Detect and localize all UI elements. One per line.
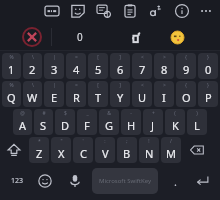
button[interactable]: Info — [172, 0, 192, 22]
button[interactable]: < — [132, 53, 152, 79]
button[interactable]: ) — [187, 109, 207, 135]
button[interactable]: / — [161, 137, 181, 163]
staticText: 123 — [11, 176, 24, 186]
staticText: - — [130, 110, 132, 117]
staticText: . — [174, 174, 177, 189]
staticText: S — [40, 118, 47, 133]
button[interactable]: = — [66, 53, 86, 79]
staticText: Y — [117, 90, 124, 105]
button[interactable]: Voice typing — [146, 0, 166, 22]
staticText: 1 — [8, 62, 15, 77]
button[interactable]: Emoji — [34, 168, 56, 194]
button[interactable]: GIF — [42, 0, 62, 22]
button[interactable]: ' — [73, 137, 93, 163]
staticText: / — [170, 138, 172, 145]
button[interactable]: : — [95, 137, 115, 163]
button[interactable]: [ — [88, 53, 108, 79]
staticText: ] — [119, 54, 121, 61]
button[interactable]: Shift — [2, 137, 26, 163]
staticText: } — [207, 82, 209, 89]
staticText: % — [9, 82, 14, 89]
staticText: % — [9, 54, 14, 61]
button[interactable]: Microsoft SwiftKey — [92, 168, 158, 194]
staticText: { — [185, 82, 187, 89]
staticText: 6 — [117, 62, 124, 77]
staticText: I — [162, 90, 166, 105]
staticText: R — [73, 90, 80, 105]
button[interactable]: - — [121, 109, 141, 135]
staticText: } — [207, 54, 209, 61]
staticText: < — [141, 54, 144, 61]
button[interactable]: < — [132, 81, 152, 107]
staticText: 7 — [139, 62, 146, 77]
button[interactable]: ] — [110, 53, 130, 79]
button[interactable]: @ — [13, 109, 32, 135]
staticText: V — [102, 146, 109, 161]
staticText: Z — [36, 146, 43, 161]
button[interactable]: + — [143, 109, 163, 135]
staticText: = — [75, 82, 78, 89]
staticText: " — [60, 138, 63, 145]
button[interactable]: 0 — [52, 24, 108, 50]
staticText: & — [107, 110, 111, 117]
staticText: G — [105, 118, 114, 133]
staticText: B — [123, 146, 131, 161]
button[interactable]: * — [29, 137, 49, 163]
button[interactable]: & — [99, 109, 119, 135]
staticText: > — [163, 54, 166, 61]
staticText: Q — [7, 90, 16, 105]
button[interactable]: % — [2, 81, 21, 107]
button[interactable]: Backspace — [184, 137, 210, 163]
staticText: 2 — [29, 62, 36, 77]
button[interactable]: Clipboard — [120, 0, 140, 22]
button[interactable]: Stickers — [68, 0, 88, 22]
staticText: 9 — [183, 62, 190, 77]
button[interactable]: > — [154, 53, 174, 79]
button[interactable]: . — [166, 168, 184, 194]
button[interactable]: More options — [198, 0, 214, 22]
button[interactable]: 123 — [6, 168, 28, 194]
staticText: \ — [32, 82, 34, 89]
staticText: _ — [86, 110, 89, 117]
button[interactable]: { — [176, 53, 196, 79]
button[interactable]: > — [154, 81, 174, 107]
button[interactable]: { — [176, 81, 196, 107]
staticText: A — [19, 118, 27, 133]
button[interactable]: % — [2, 53, 21, 79]
button[interactable]: $ — [55, 109, 75, 135]
staticText: @ — [20, 110, 25, 117]
staticText: | — [53, 82, 56, 89]
staticText: ] — [119, 82, 121, 89]
button[interactable]: # — [34, 109, 53, 135]
staticText: H — [127, 118, 136, 133]
button[interactable]: | — [44, 53, 64, 79]
button[interactable]: Suggestion — [108, 24, 164, 50]
button[interactable]: ! — [139, 137, 159, 163]
button[interactable]: } — [198, 53, 218, 79]
staticText: { — [185, 54, 187, 61]
button[interactable]: } — [198, 81, 218, 107]
staticText: $ — [64, 110, 67, 117]
button[interactable]: ; — [117, 137, 137, 163]
button[interactable]: Enter — [190, 168, 214, 194]
button[interactable]: ] — [110, 81, 130, 107]
button[interactable]: Emoji suggestion — [154, 24, 200, 50]
button[interactable]: [ — [88, 81, 108, 107]
staticText: * — [38, 138, 41, 145]
button[interactable]: \ — [23, 53, 42, 79]
button[interactable]: _ — [77, 109, 97, 135]
button[interactable]: Close — [22, 27, 42, 47]
button[interactable]: Voice input — [66, 168, 84, 194]
button[interactable]: " — [51, 137, 71, 163]
staticText: O — [182, 90, 191, 105]
staticText: 4 — [73, 62, 80, 77]
button[interactable]: = — [66, 81, 86, 107]
staticText: K — [172, 118, 179, 133]
staticText: = — [75, 54, 78, 61]
staticText: C — [80, 146, 87, 161]
button[interactable]: | — [44, 81, 64, 107]
button[interactable]: Translate — [94, 0, 114, 22]
staticText: T — [95, 90, 102, 105]
button[interactable]: ( — [165, 109, 185, 135]
button[interactable]: \ — [23, 81, 42, 107]
